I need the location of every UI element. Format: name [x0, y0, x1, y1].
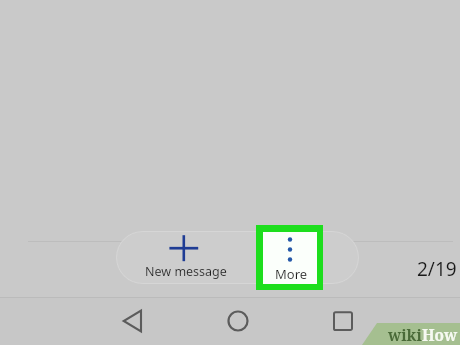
staticText: How [422, 325, 458, 345]
button[interactable]: Home [216, 299, 260, 343]
staticText: New message [145, 263, 227, 280]
staticText: wiki [388, 325, 422, 345]
button[interactable]: New message [124, 231, 244, 284]
staticText: More [275, 265, 308, 283]
button[interactable]: Back [111, 299, 155, 343]
staticText: 2/19 [417, 256, 457, 282]
button[interactable]: More [256, 225, 323, 290]
button[interactable]: Recent apps [321, 299, 365, 343]
